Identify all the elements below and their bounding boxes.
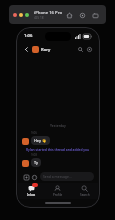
- staticText: iOS 18: [34, 16, 44, 20]
- button[interactable]: Minimise: [19, 13, 23, 17]
- staticText: 9:08: [31, 153, 37, 157]
- staticText: Send a message...: [43, 174, 72, 179]
- staticText: Rory: [41, 47, 51, 53]
- button[interactable]: Settings: [77, 10, 87, 20]
- staticText: Hey 👋: [34, 138, 47, 143]
- button[interactable]: Send a message...: [40, 172, 94, 181]
- button[interactable]: Home: [64, 10, 74, 20]
- staticText: Ty: [34, 160, 38, 165]
- button[interactable]: Ty: [31, 158, 41, 167]
- staticText: Yesterday: [50, 123, 66, 128]
- button[interactable]: Zoom: [25, 13, 29, 17]
- button[interactable]: Close: [13, 13, 17, 17]
- button[interactable]: Emoji: [30, 173, 38, 181]
- button[interactable]: Back: [22, 45, 31, 54]
- button[interactable]: Search: [76, 45, 85, 54]
- button[interactable]: Profile: [44, 183, 71, 199]
- button[interactable]: [22, 138, 29, 145]
- staticText: Inbox: [27, 193, 36, 197]
- button[interactable]: Attach: [22, 173, 30, 181]
- button[interactable]: Rory: [32, 46, 76, 53]
- button[interactable]: Hey 👋: [31, 136, 50, 145]
- button[interactable]: Search: [71, 183, 98, 199]
- button[interactable]: Screenshot: [90, 10, 100, 20]
- staticText: Search: [80, 193, 90, 197]
- button[interactable]: More options: [85, 45, 94, 54]
- button[interactable]: Inbox: [18, 183, 44, 199]
- staticText: 1:06: [24, 33, 33, 39]
- button[interactable]: [22, 160, 29, 167]
- staticText: 9:06: [31, 131, 37, 135]
- staticText: iPhone 16 Pro: [34, 10, 62, 16]
- staticText: Rylan started this thread and added you: [26, 147, 90, 151]
- staticText: Profile: [53, 193, 63, 197]
